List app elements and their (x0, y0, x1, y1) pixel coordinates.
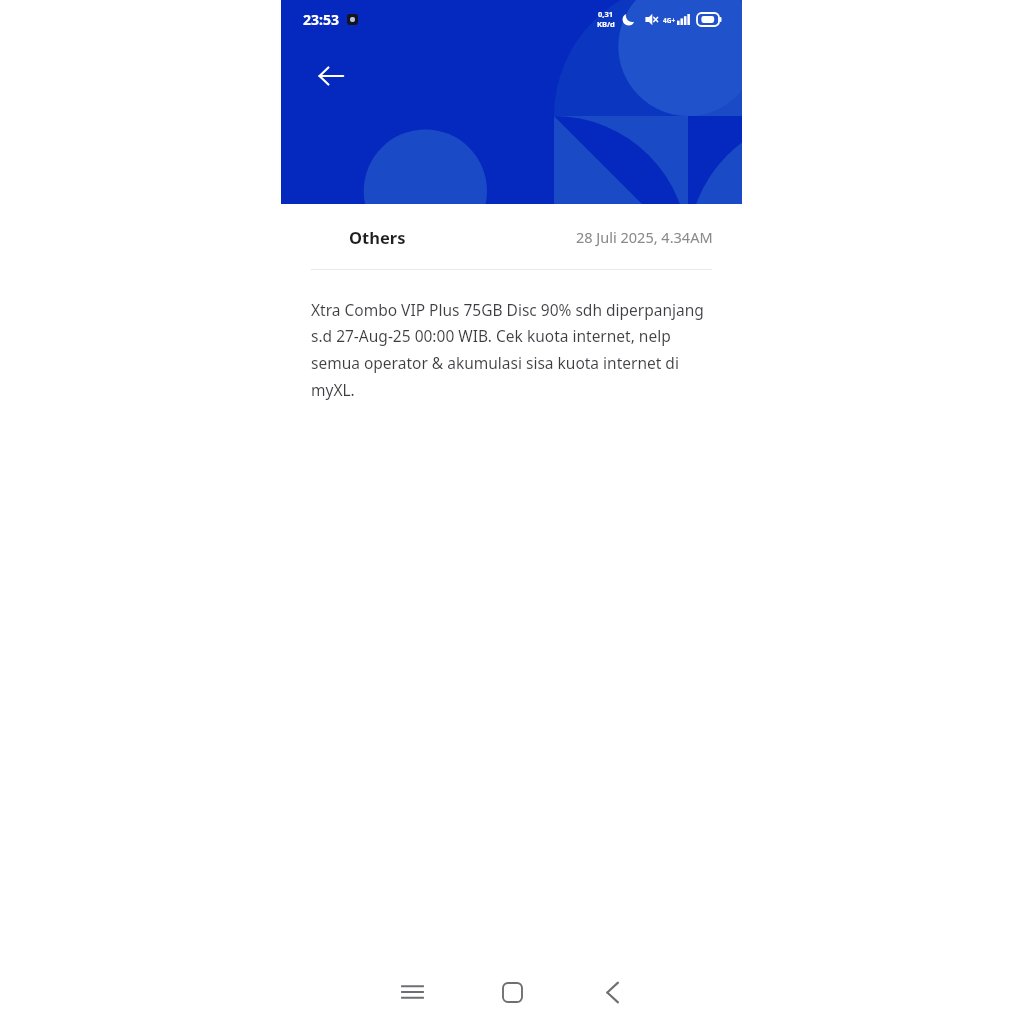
button[interactable]: Home (483, 963, 541, 1021)
staticText: Others (349, 226, 406, 248)
button[interactable]: Back (307, 52, 355, 100)
staticText: KB/d (597, 19, 615, 29)
staticText: 4G+ (663, 16, 676, 25)
staticText: 23:53 (303, 10, 339, 29)
staticText: Xtra Combo VIP Plus 75GB Disc 90% sdh di… (311, 299, 716, 400)
staticText: 28 Juli 2025, 4.34AM (576, 227, 713, 247)
button[interactable]: Recent apps (383, 963, 441, 1021)
staticText: 0,31 (598, 9, 614, 19)
button[interactable]: Back (583, 963, 641, 1021)
